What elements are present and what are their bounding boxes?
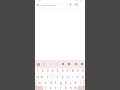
staticText: t (57, 75, 58, 79)
button[interactable]: z (43, 86, 48, 90)
button[interactable]: 5 (55, 68, 60, 74)
staticText: 1 (37, 69, 39, 73)
button[interactable]: l (78, 80, 83, 86)
button[interactable]: 0 (80, 68, 85, 74)
button[interactable]: 6 (60, 68, 65, 74)
button[interactable]: r (50, 74, 55, 80)
staticText: k (75, 81, 77, 85)
staticText: x (50, 86, 52, 90)
button[interactable]: y (60, 74, 65, 80)
staticText: Search or type URL (41, 4, 56, 6)
staticText: j (70, 81, 71, 85)
button[interactable]: 1 (35, 68, 40, 74)
button[interactable]: p (80, 74, 85, 80)
staticText: 4 (52, 69, 54, 73)
staticText: f (55, 81, 56, 85)
button[interactable]: 4 (50, 68, 55, 74)
button[interactable]: w (40, 74, 45, 80)
staticText: 8 (72, 69, 74, 73)
button[interactable]: m (73, 86, 78, 90)
button[interactable]: Emoji (36, 62, 40, 66)
staticText: m (74, 86, 77, 90)
other: Search (37, 4, 39, 6)
staticText: n (70, 86, 72, 90)
staticText: 7 (67, 69, 69, 73)
button[interactable]: o (75, 74, 80, 80)
staticText: q (37, 75, 39, 79)
staticText: z (45, 86, 47, 90)
button[interactable]: t (55, 74, 60, 80)
staticText: b (65, 86, 67, 90)
button[interactable]: 8 (70, 68, 75, 74)
staticText: 9 (77, 69, 79, 73)
button[interactable]: q (35, 74, 40, 80)
button[interactable]: Emoji (49, 62, 53, 66)
staticText: d (50, 81, 52, 85)
staticText: 2 (42, 69, 44, 73)
staticText: r (52, 75, 54, 79)
button[interactable]: k (73, 80, 78, 86)
button[interactable]: c (53, 86, 58, 90)
staticText: w (41, 75, 44, 79)
staticText: i (72, 75, 73, 79)
button[interactable]: Emoji (74, 62, 78, 66)
staticText: g (60, 81, 62, 85)
button[interactable]: s (43, 80, 48, 86)
other: Voice search (69, 3, 72, 6)
button[interactable]: Emoji (42, 62, 46, 66)
staticText: h (65, 81, 67, 85)
button[interactable]: 7 (65, 68, 70, 74)
other: More options (75, 3, 78, 6)
button[interactable]: Emoji (67, 62, 71, 66)
staticText: p (82, 75, 84, 79)
staticText: e (47, 75, 49, 79)
button[interactable]: 2 (40, 68, 45, 74)
button[interactable]: j (68, 80, 73, 86)
button[interactable]: g (58, 80, 63, 86)
staticText: c (55, 86, 57, 90)
staticText: y (62, 75, 64, 79)
button[interactable]: v (58, 86, 63, 90)
button[interactable]: i (70, 74, 75, 80)
staticText: v (60, 86, 62, 90)
staticText: 0 (82, 69, 84, 73)
staticText: s (45, 81, 47, 85)
staticText: 5 (57, 69, 59, 73)
staticText: l (80, 81, 81, 85)
button[interactable]: n (68, 86, 73, 90)
button[interactable]: x (48, 86, 53, 90)
button[interactable]: f (53, 80, 58, 86)
button[interactable]: h (63, 80, 68, 86)
button[interactable]: Emoji (55, 62, 59, 66)
button[interactable]: b (63, 86, 68, 90)
staticText: u (67, 75, 69, 79)
button[interactable]: Search (36, 2, 79, 7)
staticText: o (77, 75, 79, 79)
staticText: 6 (62, 69, 64, 73)
staticText: 3 (47, 69, 49, 73)
staticText: a (39, 81, 41, 85)
button[interactable]: d (48, 80, 53, 86)
button[interactable]: a (37, 80, 43, 86)
button[interactable]: 3 (45, 68, 50, 74)
button[interactable]: Emoji (61, 62, 65, 66)
button[interactable]: Emoji (80, 62, 84, 66)
button[interactable]: u (65, 74, 70, 80)
button[interactable]: e (45, 74, 50, 80)
button[interactable]: 9 (75, 68, 80, 74)
